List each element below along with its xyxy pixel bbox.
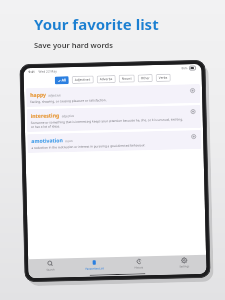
staticText: Other <box>141 76 150 80</box>
staticText: amotivation <box>31 136 63 144</box>
button[interactable]: History <box>116 256 161 272</box>
staticText: History <box>134 265 143 269</box>
staticText: Search <box>46 267 55 272</box>
button[interactable]: Other <box>138 74 153 82</box>
staticText: interesting <box>30 111 60 119</box>
staticText: Favourites List <box>85 266 104 271</box>
staticText: Adjectives <box>75 78 91 82</box>
button[interactable]: Nouns <box>119 74 135 83</box>
staticText: Someone or something that is interesting… <box>31 117 187 129</box>
button[interactable]: interesting <box>26 105 201 132</box>
button[interactable]: Settings <box>161 255 206 271</box>
staticText: 9:41 <box>28 70 36 74</box>
button[interactable]: Add amotivation to list <box>190 133 197 140</box>
staticText: Save your hard words <box>34 40 113 50</box>
staticText: feeling, showing, or causing pleasure or… <box>30 98 107 104</box>
staticText: All <box>62 78 66 82</box>
staticText: Wed 22 May <box>38 69 58 74</box>
button[interactable]: Verbs <box>156 74 171 82</box>
button[interactable]: Favourites List <box>72 257 116 273</box>
button[interactable]: All <box>55 76 69 84</box>
staticText: Your favorite list <box>34 14 159 34</box>
staticText: happy <box>30 91 46 98</box>
staticText: Settings <box>179 264 189 268</box>
staticText: noun <box>65 139 73 143</box>
button[interactable]: Search <box>28 258 72 274</box>
button[interactable]: Add interesting to list <box>189 108 197 115</box>
staticText: Nouns <box>122 77 132 81</box>
staticText: a reduction in the motivation or interes… <box>31 143 145 150</box>
staticText: adjective <box>48 93 61 98</box>
button[interactable]: Adjectives <box>72 75 94 84</box>
button[interactable]: amotivation <box>27 130 201 153</box>
button[interactable]: happy <box>26 84 200 107</box>
staticText: Adverbs <box>100 77 113 81</box>
staticText: Verbs <box>159 76 168 80</box>
button[interactable]: Adverbs <box>97 75 116 83</box>
staticText: adjective <box>62 114 75 118</box>
staticText: 86% <box>181 66 188 70</box>
button[interactable]: Add happy to list <box>189 87 196 94</box>
